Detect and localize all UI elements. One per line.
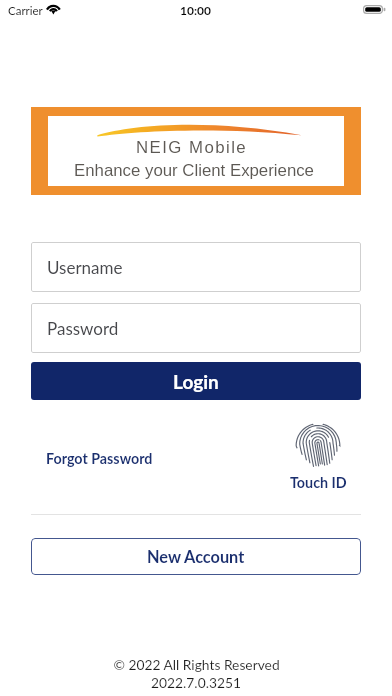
staticText: Forgot Password: [46, 450, 153, 467]
staticText: 10:00: [180, 3, 211, 17]
staticText: New Account: [147, 547, 245, 567]
staticText: 2022.7.0.3251: [151, 674, 241, 691]
staticText: NEIG Mobile: [136, 138, 248, 157]
button[interactable]: Touch ID: [284, 421, 352, 491]
other: Touch ID: [294, 421, 342, 471]
staticText: Carrier: [8, 4, 43, 18]
staticText: © 2022 All Rights Reserved: [113, 656, 280, 673]
staticText: Password: [47, 318, 119, 338]
staticText: Enhance your Client Experience: [74, 161, 314, 180]
button[interactable]: Username: [31, 242, 361, 292]
staticText: Login: [173, 370, 219, 393]
staticText: Username: [47, 257, 123, 277]
staticText: Touch ID: [290, 474, 347, 491]
button[interactable]: Password: [31, 303, 361, 353]
button[interactable]: Forgot Password: [38, 444, 161, 473]
other: Wi-Fi: [46, 0, 64, 16]
button[interactable]: New Account: [31, 538, 361, 575]
button[interactable]: Login: [31, 362, 361, 400]
